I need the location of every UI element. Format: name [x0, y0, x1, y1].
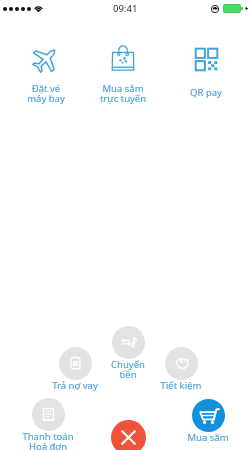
button[interactable]: Chuyển tiền: [112, 326, 145, 359]
staticText: Tiết kiệm: [141, 379, 221, 392]
button[interactable]: Thanh toán Hoá đơn: [32, 398, 65, 431]
staticText: QR pay: [166, 86, 246, 99]
button[interactable]: QR pay: [166, 86, 246, 99]
staticText: Mua sắm: [168, 431, 248, 444]
staticText: 09:41: [113, 2, 138, 15]
button[interactable]: Mua sắm trực tuyến: [83, 82, 163, 105]
button[interactable]: Tiết kiệm: [165, 347, 198, 380]
button[interactable]: Mua sắm: [192, 399, 225, 432]
staticText: Thanh toán Hoá đơn: [8, 430, 88, 450]
staticText: Chuyển tiền: [88, 358, 168, 381]
button[interactable]: Close menu: [111, 420, 146, 450]
staticText: Đặt vé máy bay: [6, 82, 86, 105]
button[interactable]: Đặt vé máy bay: [6, 82, 86, 105]
staticText: Mua sắm trực tuyến: [83, 82, 163, 105]
button[interactable]: Trả nợ vay: [59, 347, 92, 380]
staticText: Trả nợ vay: [35, 379, 115, 392]
